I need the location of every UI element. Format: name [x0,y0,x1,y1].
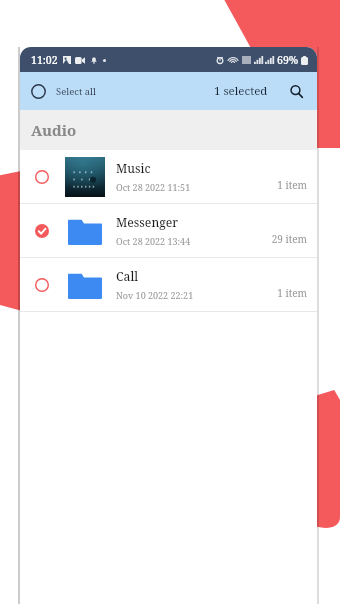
button[interactable]: Call [20,258,317,311]
button[interactable]: Messenger [20,204,317,257]
staticText: 1 item [277,178,307,192]
staticText: 11:02 [31,53,58,67]
button[interactable]: Search [285,80,307,102]
staticText: Messenger [116,214,179,230]
staticText: Audio [31,120,77,140]
staticText: Call [116,268,139,284]
staticText: Oct 28 2022 11:51 [116,181,191,193]
staticText: Music [116,160,151,176]
staticText: 69% [277,53,299,67]
staticText: Oct 28 2022 13:44 [116,235,191,247]
button[interactable]: Music [20,150,317,203]
staticText: 1 selected [214,83,268,99]
staticText: Select all [56,85,97,98]
button[interactable]: Select all [20,78,105,105]
staticText: 1 item [277,286,307,300]
staticText: 29 item [271,232,307,246]
staticText: Nov 10 2022 22:21 [116,289,194,301]
